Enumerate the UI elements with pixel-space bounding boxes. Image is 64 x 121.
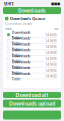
staticText: Downloads Table [11,65,30,75]
staticText: Downloads upload [9,100,55,107]
staticText: 14 MB [45,56,57,61]
staticText: Downloads Table [11,35,30,46]
button[interactable]: Downloads Table [5,38,59,44]
button[interactable]: Downloads Table [5,44,59,50]
staticText: Download all [15,91,48,99]
staticText: 14 MB [45,73,57,79]
button[interactable]: Downloads Table [5,32,59,38]
staticText: 14 MB [45,50,57,55]
staticText: Downloads Table [11,53,30,64]
staticText: 14 MB [45,62,57,67]
button[interactable] [3,110,61,119]
staticText: 14 MB [45,44,57,49]
button[interactable]: Downloads [3,7,61,14]
staticText: 14 MB [45,38,57,43]
staticText: Downloads Table [11,29,30,40]
staticText: 9:41 [4,0,14,7]
button[interactable]: Downloads Table [5,67,59,73]
button[interactable]: Downloads Table [5,73,59,79]
staticText: Connection details [5,22,32,26]
button[interactable]: Downloads upload [3,99,61,107]
staticText: 14 MB [45,32,57,37]
button[interactable]: Downloads Table [5,61,59,67]
staticText: Name [5,27,12,31]
staticText: Downloads Table [11,41,30,52]
button[interactable]: Downloads Table [5,56,59,61]
staticText: Downloads Table [11,47,30,58]
staticText: Downloads Table [11,71,30,81]
staticText: Size [54,27,59,31]
staticText: Downloads [18,7,46,14]
staticText: 14 MB [45,67,57,73]
staticText: ◼◼◼ [51,1,60,6]
staticText: Downloads Table [11,59,30,69]
button[interactable]: Downloads Table [5,50,59,56]
staticText: Downloads Queue [10,16,45,21]
button[interactable]: Download all [3,92,61,98]
